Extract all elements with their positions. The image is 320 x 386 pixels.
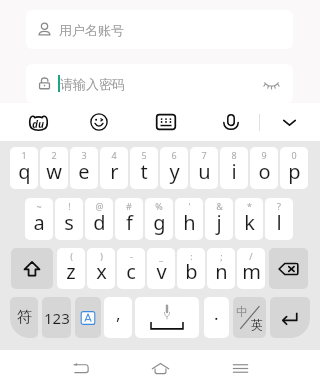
button[interactable]: 1 bbox=[10, 147, 38, 189]
staticText: 1 bbox=[21, 149, 27, 161]
staticText: # bbox=[126, 200, 132, 212]
button[interactable]: % bbox=[145, 198, 173, 240]
staticText: 5 bbox=[141, 149, 147, 161]
button[interactable]: - bbox=[117, 248, 145, 289]
button[interactable]: 5 bbox=[130, 147, 158, 189]
staticText: 9 bbox=[261, 149, 267, 161]
button[interactable]: Voice input bbox=[217, 108, 245, 136]
button[interactable]: 请输入密码 bbox=[26, 64, 293, 103]
button[interactable]: @ bbox=[85, 198, 113, 240]
staticText: i bbox=[231, 158, 237, 185]
button[interactable]: 用户名账号 bbox=[26, 10, 293, 49]
staticText: g bbox=[153, 209, 166, 236]
staticText: ( bbox=[70, 250, 73, 262]
button[interactable]: Keyboard layout bbox=[152, 108, 180, 136]
button[interactable]: ? bbox=[265, 198, 293, 240]
button[interactable]: Shift bbox=[11, 248, 53, 289]
staticText: , bbox=[116, 302, 121, 325]
button[interactable]: Space bbox=[135, 297, 199, 338]
button[interactable]: . bbox=[204, 297, 229, 338]
button[interactable]: Hide keyboard bbox=[274, 107, 304, 137]
staticText: - bbox=[130, 250, 133, 262]
staticText: n bbox=[215, 258, 228, 285]
staticText: ) bbox=[100, 250, 103, 262]
button[interactable]: Switch case bbox=[75, 297, 101, 338]
staticText: 6 bbox=[171, 149, 177, 161]
staticText: ! bbox=[68, 200, 71, 212]
staticText: y bbox=[169, 158, 180, 185]
staticText: 7 bbox=[201, 149, 207, 161]
staticText: 中 bbox=[236, 304, 248, 319]
button[interactable]: / bbox=[237, 248, 265, 289]
button[interactable]: ' bbox=[175, 198, 203, 240]
button[interactable]: ; bbox=[207, 248, 235, 289]
button[interactable]: 123 bbox=[42, 297, 71, 338]
staticText: f bbox=[126, 209, 133, 236]
button[interactable]: ( bbox=[57, 248, 85, 289]
staticText: . bbox=[214, 302, 219, 325]
button[interactable]: Back bbox=[60, 350, 100, 386]
button[interactable]: 2 bbox=[40, 147, 68, 189]
button[interactable]: Show password bbox=[259, 72, 283, 96]
staticText: w bbox=[46, 158, 62, 185]
staticText: k bbox=[244, 209, 255, 236]
button[interactable]: * bbox=[235, 198, 263, 240]
staticText: 请输入密码 bbox=[60, 76, 125, 92]
staticText: x bbox=[96, 258, 107, 285]
staticText: r bbox=[110, 158, 119, 185]
staticText: b bbox=[185, 258, 198, 285]
button[interactable]: 6 bbox=[160, 147, 188, 189]
staticText: ? bbox=[277, 200, 281, 212]
button[interactable]: Enter bbox=[270, 297, 310, 338]
staticText: q bbox=[18, 158, 31, 185]
staticText: 用户名账号 bbox=[59, 22, 124, 38]
staticText: p bbox=[288, 158, 301, 185]
staticText: d bbox=[93, 209, 106, 236]
staticText: m bbox=[242, 258, 261, 285]
staticText: 2 bbox=[51, 149, 57, 161]
button[interactable]: ! bbox=[55, 198, 83, 240]
staticText: ' bbox=[188, 200, 191, 212]
staticText: 4 bbox=[111, 149, 117, 161]
button[interactable]: Chinese English switch bbox=[233, 297, 266, 338]
button[interactable]: 7 bbox=[190, 147, 218, 189]
staticText: 8 bbox=[231, 149, 237, 161]
staticText: / bbox=[249, 250, 253, 262]
staticText: _ bbox=[159, 250, 163, 262]
staticText: ; bbox=[220, 250, 223, 262]
staticText: l bbox=[276, 209, 282, 236]
staticText: du bbox=[32, 117, 44, 131]
staticText: & bbox=[216, 200, 223, 212]
button[interactable]: Baidu input bbox=[24, 108, 52, 136]
staticText: c bbox=[126, 258, 136, 285]
button[interactable]: 9 bbox=[250, 147, 278, 189]
staticText: : bbox=[190, 250, 193, 262]
staticText: @ bbox=[95, 200, 104, 212]
button[interactable]: 符 bbox=[10, 297, 38, 338]
staticText: v bbox=[156, 258, 167, 285]
staticText: o bbox=[258, 158, 271, 185]
button[interactable]: & bbox=[205, 198, 233, 240]
button[interactable]: ~ bbox=[25, 198, 53, 240]
button[interactable]: 3 bbox=[70, 147, 98, 189]
staticText: 0 bbox=[291, 149, 297, 161]
button[interactable]: : bbox=[177, 248, 205, 289]
staticText: 123 bbox=[44, 308, 70, 328]
button[interactable]: Backspace bbox=[269, 248, 308, 289]
staticText: a bbox=[33, 209, 45, 236]
staticText: u bbox=[198, 158, 211, 185]
staticText: s bbox=[64, 209, 74, 236]
button[interactable]: Recents bbox=[220, 350, 260, 386]
button[interactable]: , bbox=[104, 297, 132, 338]
staticText: 符 bbox=[17, 308, 32, 327]
button[interactable]: Home bbox=[140, 350, 180, 386]
button[interactable]: ) bbox=[87, 248, 115, 289]
button[interactable]: _ bbox=[147, 248, 175, 289]
button[interactable]: Emoji bbox=[85, 108, 113, 136]
button[interactable]: 8 bbox=[220, 147, 248, 189]
staticText: * bbox=[247, 200, 252, 212]
button[interactable]: 0 bbox=[280, 147, 308, 189]
button[interactable]: 4 bbox=[100, 147, 128, 189]
button[interactable]: # bbox=[115, 198, 143, 240]
staticText: j bbox=[216, 209, 222, 236]
